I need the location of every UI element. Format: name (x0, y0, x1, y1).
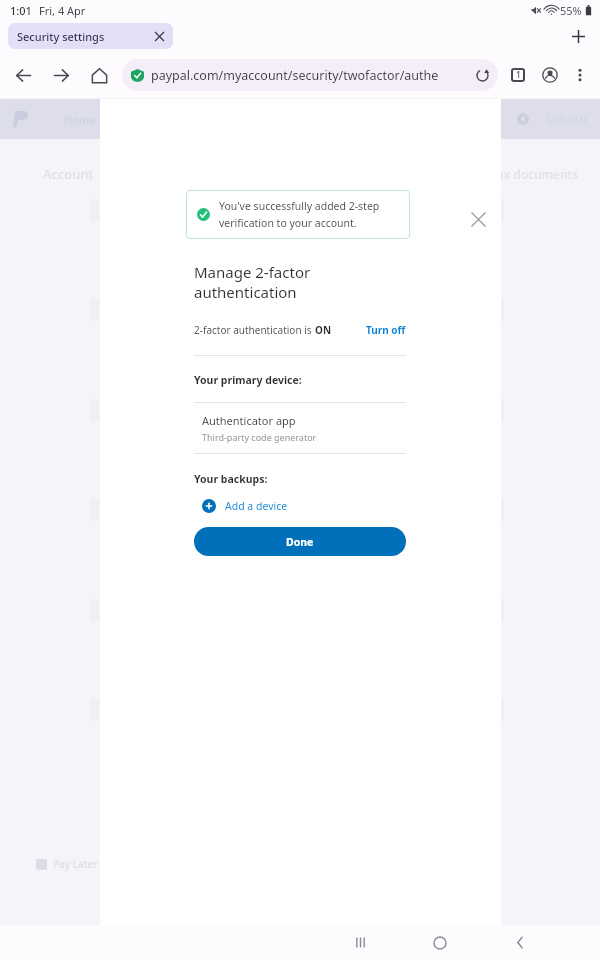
staticText: Third-party code generator (202, 431, 317, 443)
staticText: 55% (560, 3, 582, 18)
button[interactable]: Done (194, 527, 406, 556)
button[interactable]: Turn off (366, 323, 406, 337)
staticText: Add a device (225, 499, 288, 513)
button[interactable]: Authenticator app (194, 413, 406, 443)
staticText: Your primary device: (194, 373, 302, 387)
staticText: 1 (516, 69, 521, 81)
staticText: Security settings (17, 29, 105, 44)
button[interactable]: Security settings (8, 23, 173, 49)
staticText: You've successfully added 2-step (219, 199, 380, 213)
staticText: Home (64, 112, 96, 127)
button[interactable]: More options (566, 61, 594, 89)
staticText: Pay Later (53, 857, 98, 871)
button[interactable]: Forward (48, 62, 74, 88)
staticText: paypal.com/myaccount/security/twofactor/… (151, 67, 465, 84)
button[interactable]: Close tab (148, 25, 170, 47)
button[interactable]: Home (86, 62, 112, 88)
button[interactable]: Add a device (194, 496, 293, 516)
staticText: Manage 2-factor authentication (194, 262, 406, 302)
staticText: verification to your account. (219, 216, 357, 230)
staticText: Done (286, 535, 314, 549)
staticText: Authenticator app (202, 413, 296, 428)
button[interactable]: paypal.com/myaccount/security/twofactor/… (122, 59, 498, 91)
button[interactable]: Tabs (504, 61, 532, 89)
button[interactable]: Back (10, 62, 36, 88)
button[interactable]: Home (420, 925, 460, 960)
button[interactable]: Reload (469, 62, 495, 88)
staticText: Your backups: (194, 472, 268, 486)
button[interactable]: Recents (340, 925, 380, 960)
staticText: Turn off (366, 323, 406, 337)
button[interactable]: Back (500, 925, 540, 960)
staticText: 1:01 (10, 3, 32, 18)
staticText: Fri, 4 Apr (39, 3, 86, 18)
staticText: ON (315, 323, 332, 337)
button[interactable]: New tab (564, 22, 592, 50)
staticText: LOG OUT (548, 113, 588, 125)
staticText: Account (43, 165, 94, 183)
button[interactable]: Profile (536, 61, 564, 89)
button[interactable]: Close (462, 203, 494, 235)
staticText: 2-factor authentication is (194, 323, 315, 337)
staticText: ax documents (497, 166, 578, 182)
